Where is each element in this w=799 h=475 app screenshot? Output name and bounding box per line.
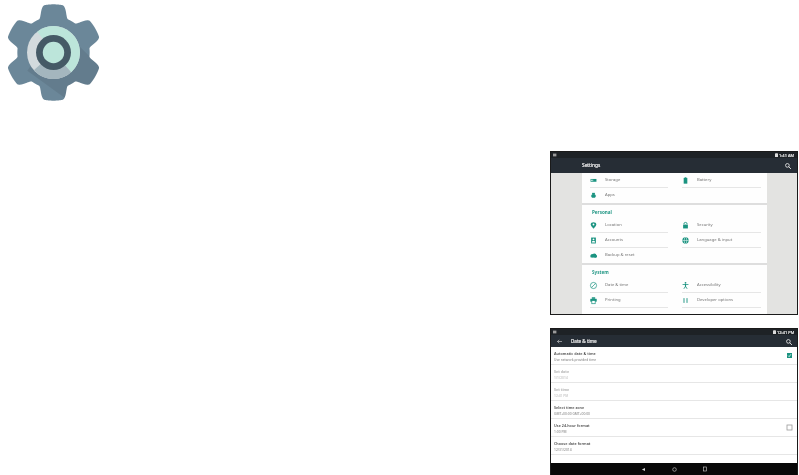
- staticText: Battery: [697, 177, 712, 183]
- button[interactable]: Back: [637, 463, 649, 475]
- staticText: Automatic date & time: [554, 351, 596, 356]
- staticText: Use network-provided time: [554, 357, 597, 361]
- staticText: Accessibility: [697, 282, 721, 288]
- button[interactable]: Backup & reset: [582, 248, 674, 263]
- staticText: Accounts: [605, 237, 623, 243]
- button[interactable]: Search: [782, 160, 793, 171]
- staticText: Apps: [605, 192, 615, 198]
- button[interactable]: Language & input: [674, 233, 767, 248]
- staticText: Location: [605, 222, 622, 228]
- staticText: Date & time: [571, 338, 597, 344]
- button[interactable]: Developer options: [674, 293, 767, 308]
- staticText: 1:41 AM: [779, 153, 795, 158]
- staticText: Use 24-hour format: [554, 423, 590, 428]
- button[interactable]: Security: [674, 218, 767, 233]
- staticText: GMT+00:00 GMT+00:00: [554, 411, 590, 415]
- staticText: 1/1/2014: [554, 375, 568, 379]
- button[interactable]: Back: [554, 336, 564, 346]
- staticText: 12:41 PM: [777, 330, 795, 335]
- staticText: Set date: [554, 369, 570, 374]
- staticText: Backup & reset: [605, 252, 635, 258]
- button[interactable]: Location: [582, 218, 674, 233]
- button[interactable]: Storage: [582, 173, 674, 188]
- button[interactable]: Accessibility: [674, 278, 767, 293]
- button[interactable]: Set time: [551, 383, 797, 401]
- button[interactable]: Search: [783, 336, 794, 347]
- button[interactable]: Date & time: [582, 278, 674, 293]
- staticText: 12/31/2014: [554, 447, 572, 451]
- button[interactable]: Apps: [582, 188, 674, 203]
- staticText: Select time zone: [554, 405, 585, 410]
- staticText: Settings: [582, 162, 601, 169]
- button[interactable]: Use 24-hour format: [551, 419, 797, 437]
- button[interactable]: Battery: [674, 173, 767, 188]
- button[interactable]: Automatic date & time: [551, 347, 797, 365]
- button[interactable]: Select time zone: [551, 401, 797, 419]
- staticText: Date & time: [605, 282, 629, 288]
- button[interactable]: Choose date format: [551, 437, 797, 455]
- button[interactable]: Set date: [551, 365, 797, 383]
- staticText: System: [592, 269, 609, 275]
- staticText: Language & input: [697, 237, 733, 243]
- staticText: Choose date format: [554, 441, 591, 446]
- button[interactable]: Home: [668, 463, 680, 475]
- button[interactable]: Recents: [699, 463, 711, 475]
- staticText: Set time: [554, 387, 570, 392]
- staticText: 1:00 PM: [554, 429, 567, 433]
- staticText: Personal: [592, 209, 612, 215]
- button[interactable]: Printing: [582, 293, 674, 308]
- staticText: 12:41 PM: [554, 393, 569, 397]
- staticText: Developer options: [697, 297, 734, 303]
- staticText: Printing: [605, 297, 621, 303]
- staticText: Security: [697, 222, 713, 228]
- staticText: Storage: [605, 177, 621, 183]
- button[interactable]: Accounts: [582, 233, 674, 248]
